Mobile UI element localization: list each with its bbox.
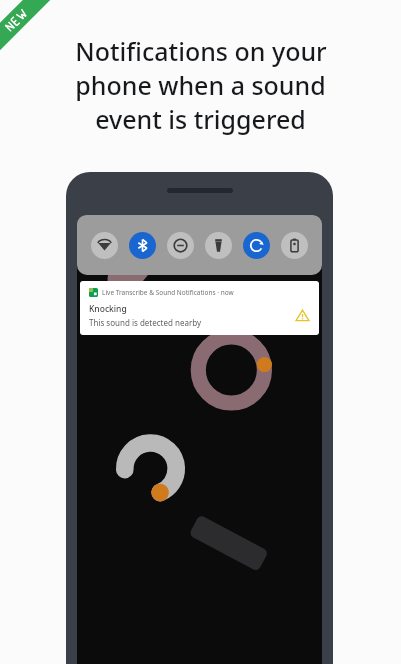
staticText: Knocking [89, 303, 127, 315]
button[interactable]: Do not disturb [167, 232, 194, 259]
staticText: phone when a sound [75, 68, 326, 102]
other: Sound alert [295, 308, 310, 323]
button[interactable]: Battery saver [281, 232, 308, 259]
staticText: Live Transcribe & Sound Notifications · … [102, 288, 234, 297]
other: New [0, 0, 76, 76]
button[interactable]: Flashlight [205, 232, 232, 259]
staticText: Notifications on your [75, 34, 327, 68]
staticText: This sound is detected nearby [89, 317, 202, 328]
button[interactable]: Wi-Fi [91, 232, 118, 259]
button[interactable]: Auto rotate [243, 232, 270, 259]
staticText: event is triggered [95, 102, 306, 136]
button[interactable]: Bluetooth [129, 232, 156, 259]
button[interactable]: Live Transcribe & Sound Notifications · … [80, 281, 319, 335]
